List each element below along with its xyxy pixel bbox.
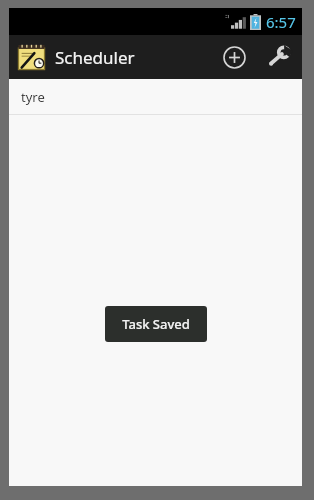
staticText: Task Saved — [122, 315, 190, 333]
button[interactable]: tyre — [9, 79, 302, 114]
staticText: tyre — [21, 88, 45, 106]
button[interactable]: Add task — [212, 35, 256, 79]
button[interactable]: Settings — [256, 35, 302, 79]
staticText: Scheduler — [55, 46, 135, 69]
staticText: 6:57 — [266, 12, 296, 32]
